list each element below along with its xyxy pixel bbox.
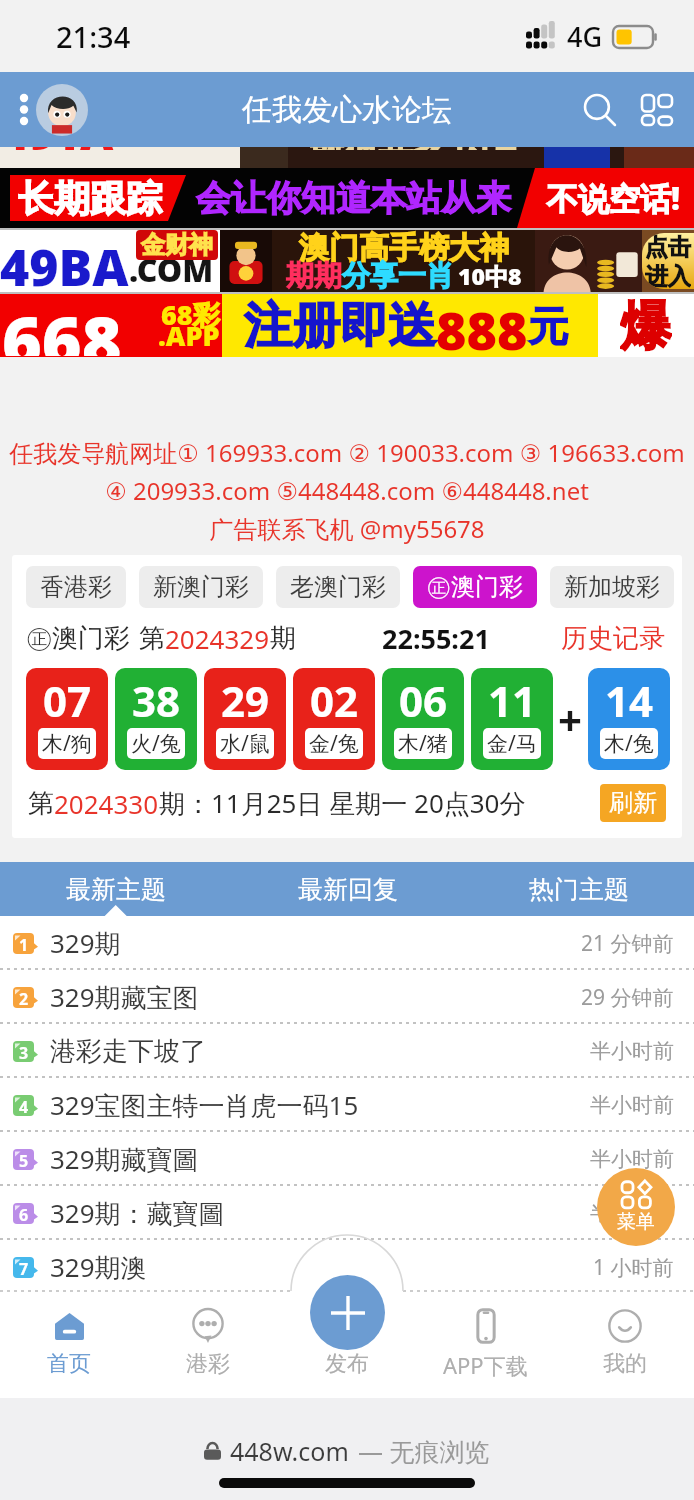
button[interactable]: 最新回复 bbox=[232, 862, 463, 916]
button[interactable]: 发布 bbox=[277, 1290, 416, 1388]
button[interactable]: 热门主题 bbox=[463, 862, 694, 916]
button[interactable]: ㊣澳门彩 bbox=[413, 566, 537, 608]
staticText: 10中8 bbox=[458, 260, 522, 291]
button[interactable]: 7 bbox=[0, 1240, 694, 1294]
button[interactable]: 新加坡彩 bbox=[550, 566, 674, 608]
staticText: 会让你知道本站从来 bbox=[196, 176, 511, 220]
button[interactable]: 长期跟踪 bbox=[0, 168, 694, 228]
staticText: 第 bbox=[28, 787, 54, 820]
staticText: 最新主题 bbox=[66, 874, 166, 905]
button[interactable]: Profile bbox=[36, 84, 88, 136]
staticText: 港彩走下坡了 bbox=[50, 1035, 206, 1068]
staticText: 68彩 bbox=[161, 296, 220, 333]
staticText: 329期澳 bbox=[50, 1249, 147, 1285]
staticText: 火/兔 bbox=[131, 729, 181, 758]
staticText: 广告联系飞机 @my55678 bbox=[209, 512, 485, 545]
staticText: 长期跟踪 bbox=[18, 176, 162, 221]
button[interactable]: 老澳门彩 bbox=[276, 566, 400, 608]
button[interactable]: 新澳门彩 bbox=[139, 566, 263, 608]
button[interactable]: Categories bbox=[631, 84, 683, 136]
button[interactable]: 5 bbox=[0, 1132, 694, 1186]
staticText: 点击 bbox=[645, 233, 691, 262]
staticText: 1 bbox=[19, 934, 29, 955]
button[interactable]: 4 bbox=[0, 1078, 694, 1132]
staticText: 香港彩 bbox=[40, 572, 112, 602]
button[interactable]: 香港彩 bbox=[26, 566, 126, 608]
staticText: 448w.com bbox=[230, 1434, 349, 1468]
staticText: 21:34 bbox=[56, 17, 131, 56]
button[interactable]: 港彩 bbox=[138, 1290, 277, 1388]
staticText: 2024329 bbox=[165, 621, 270, 656]
staticText: 水/鼠 bbox=[220, 729, 270, 758]
button[interactable]: 668 bbox=[0, 294, 694, 357]
staticText: 木/猪 bbox=[398, 729, 448, 758]
staticText: 29 分钟前 bbox=[581, 983, 674, 1012]
staticText: 329期藏寶圖 bbox=[50, 1141, 199, 1177]
staticText: ㊣澳门彩 bbox=[26, 622, 130, 655]
button[interactable]: 我的 bbox=[555, 1290, 694, 1388]
staticText: .COM bbox=[129, 248, 214, 292]
staticText: 1 小时前 bbox=[593, 1253, 674, 1282]
staticText: .APP bbox=[158, 317, 220, 354]
staticText: 新澳门彩 bbox=[153, 572, 249, 602]
button[interactable]: 首页 bbox=[0, 1290, 138, 1388]
staticText: 热门主题 bbox=[529, 874, 629, 905]
staticText: 半小时前 bbox=[590, 1200, 674, 1226]
staticText: ④ 209933.com ⑤448448.com ⑥448448.net bbox=[105, 474, 589, 507]
staticText: 02 bbox=[310, 672, 359, 729]
button[interactable]: 1 bbox=[0, 916, 694, 970]
staticText: — 无痕浏览 bbox=[358, 1434, 490, 1468]
staticText: 329期 bbox=[50, 925, 121, 961]
staticText: 元 bbox=[528, 301, 568, 351]
staticText: 任我发导航网址① 169933.com ② 190033.com ③ 19663… bbox=[9, 436, 685, 469]
staticText: 期：11月25日 星期一 20点30分 bbox=[159, 785, 526, 821]
staticText: 4G bbox=[567, 18, 603, 55]
button[interactable]: Post bbox=[310, 1275, 385, 1350]
staticText: 木/兔 bbox=[604, 729, 654, 758]
staticText: 分享一肖 bbox=[342, 258, 454, 293]
staticText: 329宝图主特一肖虎一码15 bbox=[50, 1087, 359, 1123]
staticText: 668 bbox=[2, 294, 122, 356]
staticText: 14 bbox=[605, 672, 654, 729]
button[interactable]: Menu bbox=[597, 1168, 675, 1246]
button[interactable]: APP下载 bbox=[416, 1290, 555, 1390]
staticText: 注册即送 bbox=[244, 296, 436, 356]
staticText: 49BA bbox=[0, 233, 129, 292]
staticText: 不说空话! bbox=[547, 177, 680, 219]
staticText: 5 bbox=[19, 1150, 29, 1171]
staticText: 38 bbox=[132, 672, 181, 729]
staticText: 澳门高手榜大神 bbox=[299, 229, 509, 267]
staticText: 敢保开奖 内幕 bbox=[310, 147, 523, 150]
staticText: 半小时前 bbox=[590, 1038, 674, 1064]
button[interactable]: More options bbox=[10, 86, 38, 134]
button[interactable]: 刷新 bbox=[600, 784, 666, 822]
staticText: 爆 bbox=[620, 294, 672, 357]
staticText: 港彩 bbox=[186, 1350, 230, 1378]
button[interactable]: Search bbox=[574, 84, 626, 136]
staticText: 木/狗 bbox=[42, 729, 92, 758]
staticText: 半小时前 bbox=[590, 1146, 674, 1172]
button[interactable]: 49TA bbox=[0, 147, 694, 168]
staticText: 金/马 bbox=[487, 729, 537, 758]
button[interactable]: 6 bbox=[0, 1186, 694, 1240]
staticText: 我的 bbox=[603, 1350, 647, 1378]
staticText: 刷新 bbox=[609, 788, 657, 818]
staticText: 最新回复 bbox=[298, 874, 398, 905]
staticText: 期 bbox=[270, 622, 296, 655]
button[interactable]: 最新主题 bbox=[0, 862, 232, 916]
button[interactable]: 49BA bbox=[0, 230, 694, 292]
staticText: 历史记录 bbox=[561, 622, 665, 655]
staticText: 第 bbox=[139, 622, 165, 655]
staticText: 07 bbox=[43, 672, 92, 729]
staticText: 29 bbox=[221, 672, 270, 729]
staticText: ㊣澳门彩 bbox=[427, 572, 523, 602]
button[interactable]: 3 bbox=[0, 1024, 694, 1078]
staticText: 半小时前 bbox=[590, 1092, 674, 1118]
staticText: 6 bbox=[19, 1204, 29, 1225]
staticText: 888 bbox=[436, 294, 528, 357]
button[interactable]: 2 bbox=[0, 970, 694, 1024]
staticText: 任我发心水论坛 bbox=[242, 91, 452, 129]
staticText: 金财神 bbox=[141, 230, 213, 260]
staticText: 金/兔 bbox=[309, 729, 359, 758]
